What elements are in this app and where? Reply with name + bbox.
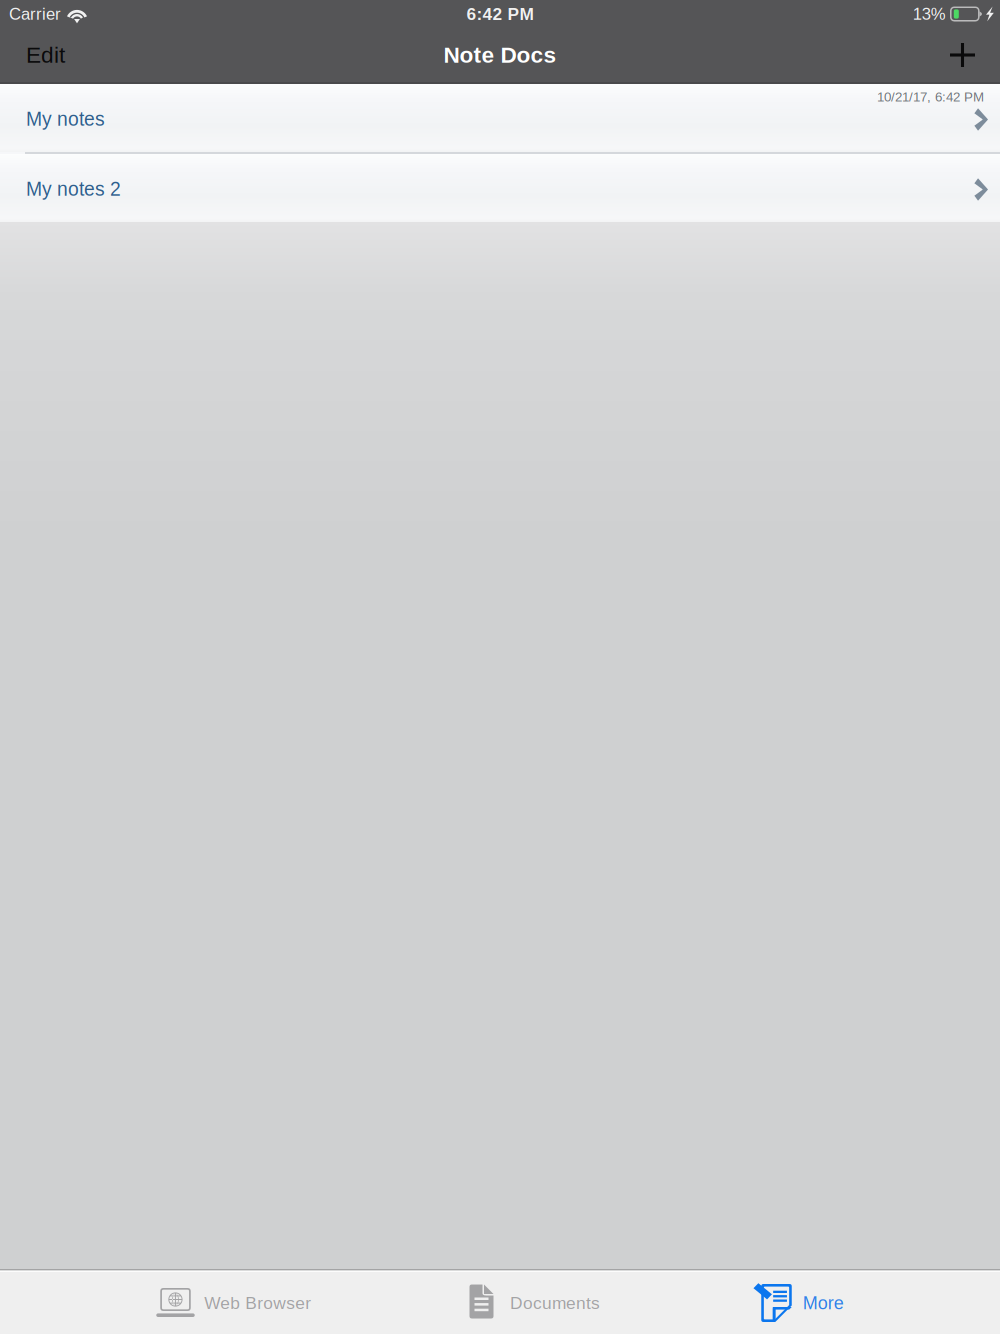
button[interactable]: My notes 2 (0, 154, 1000, 222)
button[interactable]: Documents (467, 1272, 596, 1334)
button[interactable]: New note (926, 28, 1000, 82)
staticText: 6:42 PM (466, 4, 533, 24)
button[interactable]: More (753, 1272, 844, 1334)
staticText: Note Docs (443, 42, 556, 68)
staticText: My notes (26, 108, 105, 130)
staticText: Web Browser (204, 1293, 311, 1313)
button[interactable]: Web Browser (156, 1272, 311, 1334)
staticText: Carrier (9, 5, 61, 23)
staticText: Documents (510, 1293, 600, 1313)
staticText: 10/21/17, 6:42 PM (877, 89, 984, 104)
staticText: Edit (26, 42, 65, 68)
staticText: More (803, 1293, 844, 1313)
staticText: 13% (913, 5, 946, 23)
staticText: My notes 2 (26, 178, 121, 200)
button[interactable]: 10/21/17, 6:42 PM (0, 84, 1000, 152)
button[interactable]: Edit (0, 28, 91, 82)
